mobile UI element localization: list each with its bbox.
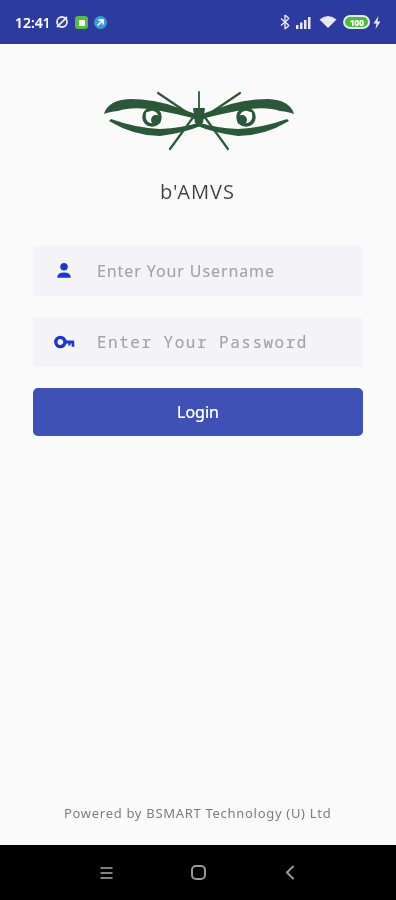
staticText: 100 — [350, 17, 364, 28]
staticText: Enter Your Username — [97, 260, 275, 282]
button[interactable] — [60, 845, 152, 900]
button[interactable] — [152, 845, 244, 900]
staticText: Powered by BSMART Technology (U) Ltd — [64, 804, 332, 822]
staticText: b'AMVS — [160, 178, 236, 205]
staticText: Login — [177, 401, 219, 423]
staticText: 12:41 — [15, 13, 51, 32]
staticText: Enter Your Password — [97, 331, 308, 353]
button[interactable]: Enter Your Username — [33, 246, 363, 296]
button[interactable] — [244, 845, 336, 900]
button[interactable]: Enter Your Password — [33, 317, 363, 367]
button[interactable]: Login — [33, 388, 363, 436]
